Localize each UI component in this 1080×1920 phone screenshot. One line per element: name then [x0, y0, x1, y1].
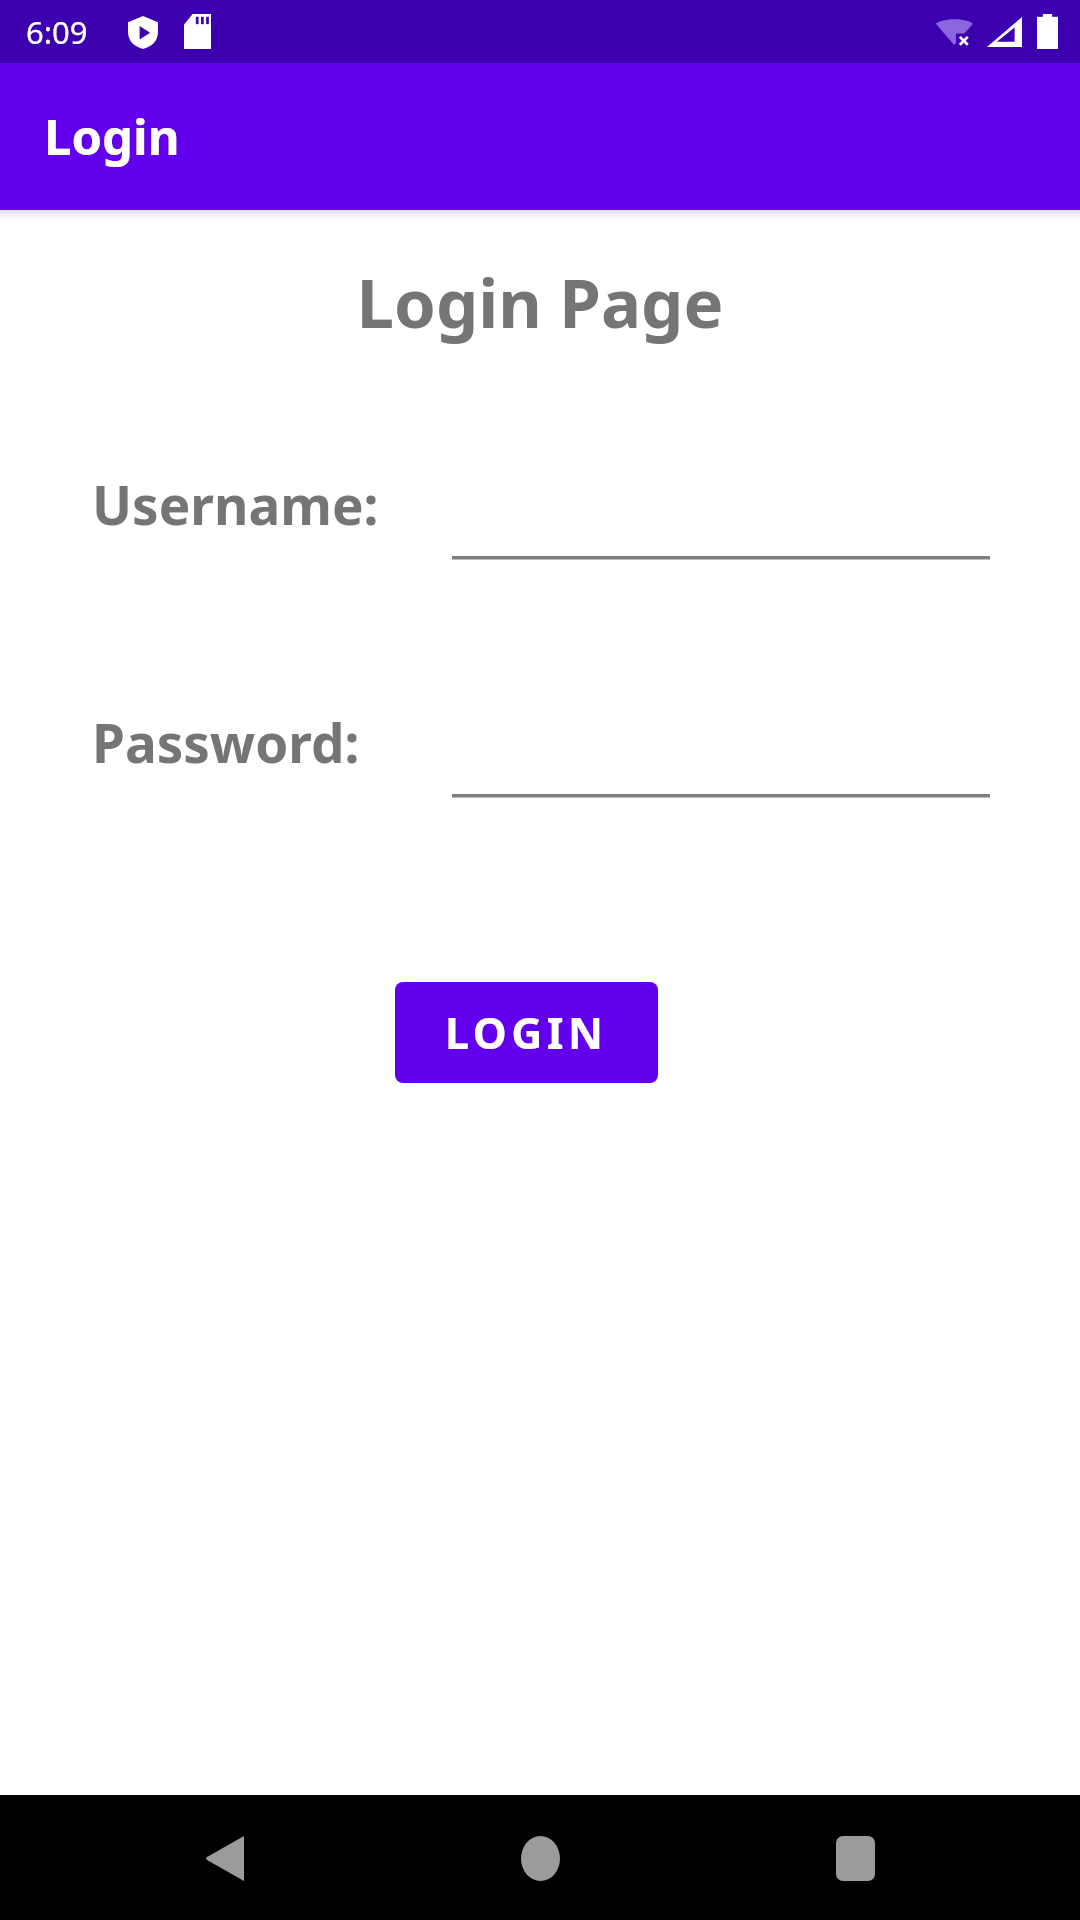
staticText: LOGIN: [445, 1003, 608, 1062]
button[interactable]: Password:: [452, 702, 990, 812]
staticText: Username:: [92, 468, 379, 540]
button[interactable]: Back: [170, 1803, 280, 1913]
staticText: Login Page: [0, 256, 1080, 347]
staticText: Login: [44, 103, 180, 170]
button[interactable]: LOGIN: [395, 982, 658, 1083]
staticText: Password:: [92, 706, 360, 778]
button[interactable]: Home: [485, 1803, 595, 1913]
button[interactable]: Recent apps: [800, 1803, 910, 1913]
staticText: 6:09: [26, 11, 88, 53]
button[interactable]: Username:: [452, 464, 990, 574]
